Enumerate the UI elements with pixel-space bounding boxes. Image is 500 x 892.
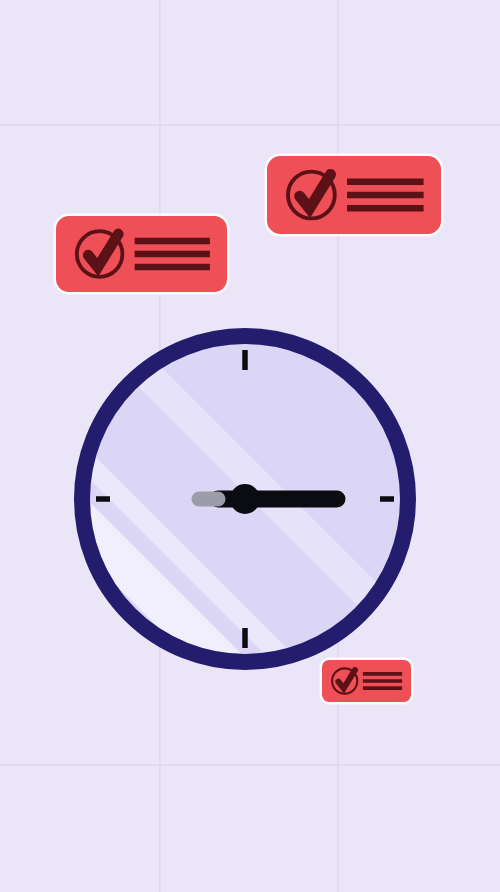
button[interactable]: Completed task — [267, 156, 441, 234]
button[interactable]: Completed task — [322, 660, 411, 702]
button[interactable]: Completed task — [56, 216, 227, 292]
